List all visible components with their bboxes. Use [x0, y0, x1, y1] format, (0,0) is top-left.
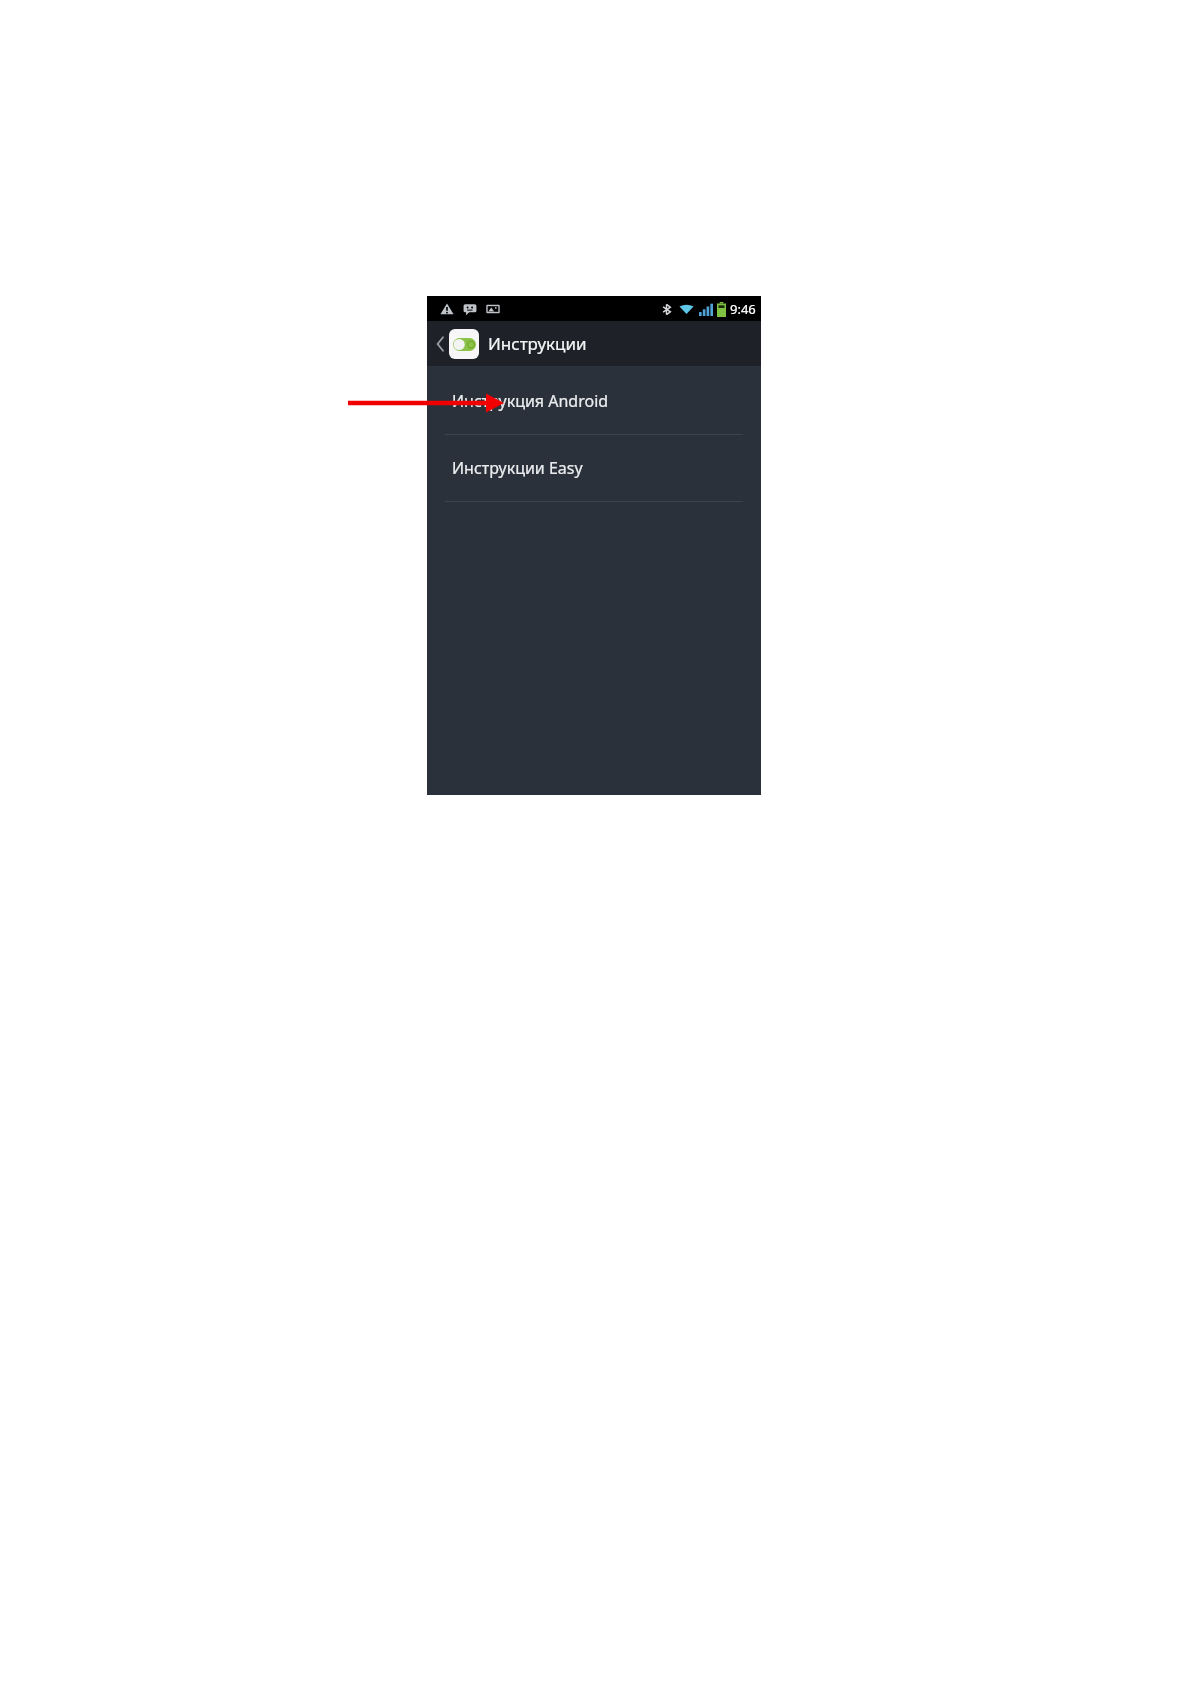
staticText: Инструкции Easy [452, 457, 583, 479]
staticText: 9:46 [730, 300, 756, 318]
button[interactable]: Инструкции Easy [427, 435, 761, 501]
staticText: Инструкции [488, 332, 587, 355]
button[interactable]: Инструкция Android [427, 368, 761, 434]
other: Back [433, 329, 447, 359]
staticText: Инструкция Android [452, 390, 609, 412]
button[interactable]: Back [427, 321, 761, 366]
